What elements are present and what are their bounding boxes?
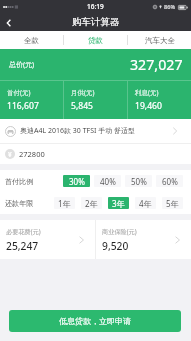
button[interactable]: 30% <box>63 175 90 187</box>
button[interactable]: ¥ <box>0 144 191 164</box>
staticText: 奥迪A4L 2016款 30 TFSI 手动 舒适型 <box>20 126 136 136</box>
button[interactable]: 60% <box>156 175 183 187</box>
button[interactable]: 贷款 <box>64 31 127 49</box>
button[interactable]: 汽车大全 <box>128 31 191 49</box>
staticText: 贷款 <box>88 36 103 45</box>
staticText: 30% <box>69 176 85 187</box>
staticText: 50% <box>131 176 147 187</box>
staticText: 商业保险(元) <box>102 227 137 235</box>
button[interactable]: 5年 <box>162 197 183 209</box>
staticText: 3年 <box>112 198 125 209</box>
staticText: 5年 <box>166 198 179 209</box>
button[interactable]: 40% <box>94 175 121 187</box>
staticText: 19,460 <box>135 100 162 112</box>
staticText: 低息贷款，立即申请 <box>59 316 131 326</box>
staticText: 1年 <box>58 198 71 209</box>
staticText: 首付比例 <box>5 177 34 186</box>
staticText: 2年 <box>85 198 98 209</box>
staticText: 5,845 <box>71 100 93 112</box>
staticText: 月供(元) <box>71 88 95 97</box>
staticText: 116,607 <box>7 100 39 112</box>
button[interactable]: 50% <box>125 175 152 187</box>
staticText: 40% <box>100 176 116 187</box>
staticText: 汽车大全 <box>145 36 175 45</box>
staticText: 全款 <box>24 36 39 45</box>
staticText: 总价(元) <box>9 60 35 70</box>
staticText: 还款年限 <box>5 199 34 208</box>
staticText: 272800 <box>19 149 45 159</box>
button[interactable]: Back <box>0 14 17 31</box>
button[interactable]: 奥迪A4L 2016款 30 TFSI 手动 舒适型 <box>0 119 191 143</box>
staticText: 购车计算器 <box>72 16 120 28</box>
staticText: 4年 <box>139 198 152 209</box>
staticText: 327,027 <box>130 55 183 74</box>
button[interactable]: 低息贷款，立即申请 <box>9 310 181 332</box>
button[interactable]: 4年 <box>135 197 156 209</box>
staticText: ¥ <box>8 150 12 159</box>
staticText: 86% <box>164 3 176 11</box>
staticText: 首付(元) <box>7 88 31 97</box>
button[interactable]: 2年 <box>81 197 102 209</box>
button[interactable]: 全款 <box>0 31 63 49</box>
staticText: 60% <box>162 176 178 187</box>
button[interactable]: 商业保险(元) <box>96 220 191 259</box>
button[interactable]: 3年 <box>108 197 129 209</box>
staticText: 25,247 <box>6 239 39 253</box>
button[interactable]: 必要花费(元) <box>0 220 95 259</box>
staticText: 16:19 <box>87 2 104 11</box>
staticText: 9,520 <box>102 239 129 253</box>
button[interactable]: 1年 <box>54 197 75 209</box>
staticText: 必要花费(元) <box>6 227 41 235</box>
staticText: 利息(元) <box>135 88 159 97</box>
